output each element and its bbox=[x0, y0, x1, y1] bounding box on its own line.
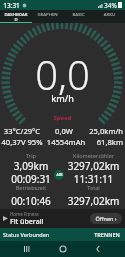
staticText: 25,0km/h bbox=[83, 126, 123, 136]
staticText: Fit überall bbox=[10, 217, 44, 227]
button[interactable]: Öffnen › bbox=[90, 213, 122, 224]
button[interactable]: BASIC bbox=[63, 10, 94, 23]
staticText: 61,8km bbox=[83, 137, 123, 147]
staticText: Total bbox=[62, 184, 125, 191]
button[interactable]: GRAPHEN bbox=[32, 10, 63, 23]
button[interactable]: Recents bbox=[19, 241, 35, 257]
staticText: Trip bbox=[0, 152, 62, 159]
staticText: DASHBOAR D bbox=[0, 11, 32, 23]
staticText: 00:10:46 bbox=[0, 194, 62, 208]
staticText: Öffnen › bbox=[95, 215, 117, 222]
button[interactable]: Home bbox=[55, 241, 71, 257]
staticText: Betriebszeit bbox=[0, 184, 62, 191]
staticText: TRENNEN bbox=[94, 231, 120, 238]
staticText: Home Fitness bbox=[10, 211, 39, 217]
staticText: 33°C/29°C bbox=[0, 126, 44, 136]
staticText: GRAPHEN bbox=[32, 11, 63, 17]
staticText: ABS bbox=[56, 173, 63, 177]
staticText: 14554mAh bbox=[44, 137, 88, 147]
staticText: 40,37V 95% bbox=[0, 137, 44, 147]
staticText: Kilometerzähler bbox=[62, 152, 125, 159]
staticText: 3297,02km bbox=[62, 159, 125, 173]
staticText: 0,0 bbox=[0, 47, 125, 101]
staticText: 34% bbox=[104, 1, 117, 10]
staticText: 13:31 bbox=[3, 1, 20, 10]
button[interactable]: AKKU bbox=[94, 10, 125, 23]
staticText: 0,0W bbox=[42, 126, 86, 136]
button[interactable]: DASHBOAR D bbox=[0, 10, 32, 23]
staticText: km/h bbox=[0, 92, 125, 104]
button[interactable]: Home Fitness bbox=[0, 209, 125, 228]
staticText: AKKU bbox=[94, 11, 125, 17]
staticText: 00:09:31 bbox=[0, 172, 62, 186]
button[interactable]: TRENNEN bbox=[92, 231, 122, 238]
staticText: 3297,02km bbox=[62, 194, 125, 208]
staticText: 11:31:11 bbox=[62, 172, 125, 186]
staticText: BASIC bbox=[63, 11, 94, 17]
button[interactable]: Back bbox=[90, 241, 106, 257]
staticText: 3,09km bbox=[0, 159, 62, 173]
staticText: Status Verbunden bbox=[3, 231, 50, 238]
staticText: Speed bbox=[0, 114, 125, 122]
